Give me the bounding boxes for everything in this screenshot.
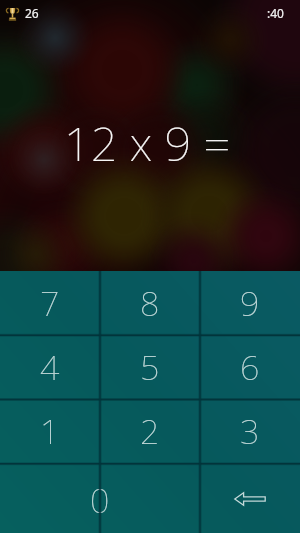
- staticText: 1: [40, 408, 60, 454]
- button[interactable]: 8: [100, 271, 200, 336]
- button[interactable]: 3: [200, 400, 300, 464]
- staticText: 6: [240, 344, 260, 390]
- staticText: 12 x 9 =: [64, 111, 231, 175]
- staticText: 8: [140, 280, 160, 326]
- button[interactable]: 6: [200, 336, 300, 400]
- button[interactable]: 4: [0, 336, 100, 400]
- staticText: :40: [267, 5, 284, 21]
- staticText: 2: [140, 408, 160, 454]
- staticText: 5: [140, 344, 160, 390]
- staticText: 7: [40, 280, 60, 326]
- button[interactable]: 5: [100, 336, 200, 400]
- staticText: 9: [240, 280, 260, 326]
- staticText: 4: [40, 344, 60, 390]
- staticText: 26: [25, 5, 39, 21]
- button[interactable]: Backspace: [200, 464, 300, 533]
- button[interactable]: 9: [200, 271, 300, 336]
- button[interactable]: 0: [0, 464, 200, 533]
- staticText: 0: [90, 477, 110, 523]
- staticText: 3: [240, 408, 260, 454]
- button[interactable]: 1: [0, 400, 100, 464]
- button[interactable]: 7: [0, 271, 100, 336]
- button[interactable]: 2: [100, 400, 200, 464]
